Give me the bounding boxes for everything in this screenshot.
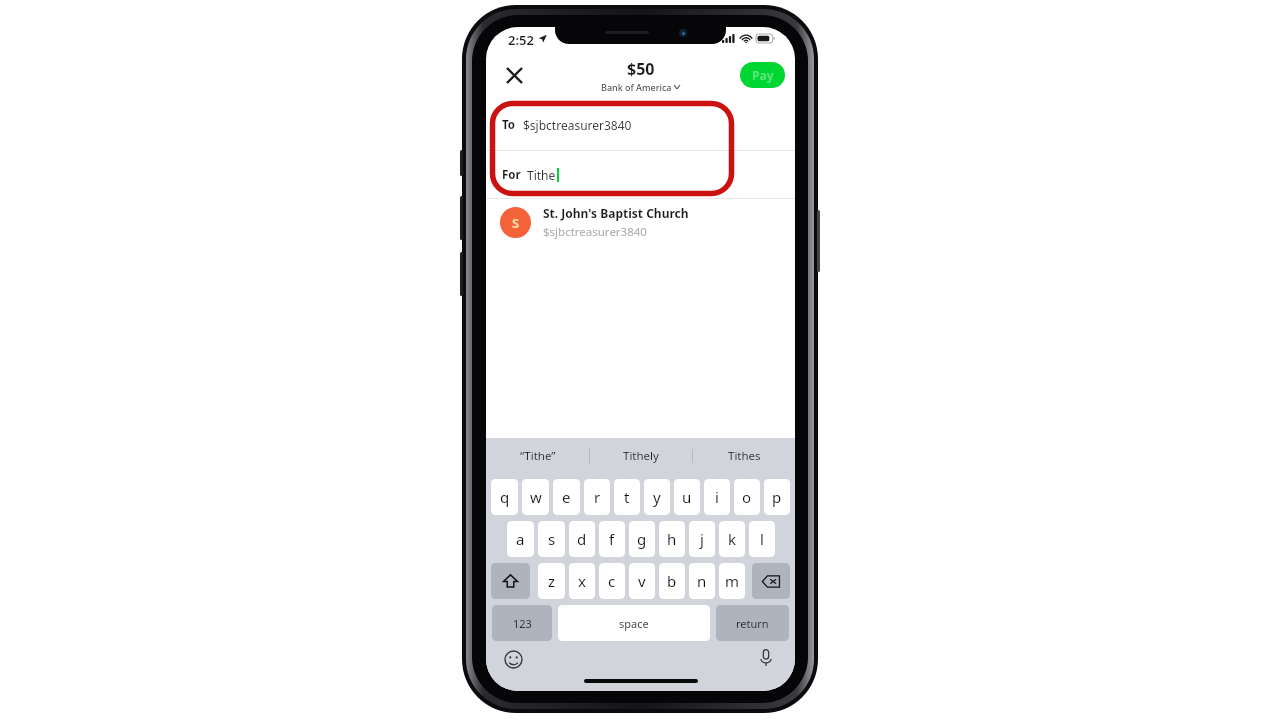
staticText: i (715, 487, 719, 507)
staticText: k (728, 529, 737, 549)
button[interactable]: m (719, 563, 745, 599)
staticText: s (548, 529, 556, 549)
button[interactable]: c (599, 563, 625, 599)
staticText: j (700, 529, 704, 549)
staticText: a (516, 529, 525, 549)
button[interactable]: Shift (491, 563, 530, 599)
button[interactable]: h (659, 521, 685, 557)
staticText: z (548, 571, 556, 591)
staticText: $50 (627, 58, 655, 80)
staticText: 2:52 (508, 31, 534, 49)
button[interactable]: Close (496, 57, 532, 93)
staticText: b (667, 571, 677, 591)
button[interactable]: p (764, 479, 790, 515)
button[interactable]: 123 (492, 605, 552, 641)
staticText: Tithely (623, 448, 659, 464)
staticText: S (512, 214, 520, 232)
button[interactable]: e (553, 479, 580, 515)
staticText: l (760, 529, 764, 549)
staticText: 123 (513, 616, 532, 631)
staticText: To (502, 117, 516, 133)
button[interactable]: $50 (601, 58, 680, 93)
button[interactable]: y (644, 479, 670, 515)
staticText: q (500, 487, 510, 507)
button[interactable]: a (507, 521, 534, 557)
button[interactable]: return (716, 605, 789, 641)
button[interactable]: u (674, 479, 700, 515)
staticText: space (619, 616, 649, 631)
button[interactable]: k (719, 521, 745, 557)
button[interactable]: o (734, 479, 760, 515)
staticText: Tithe (527, 167, 556, 183)
staticText: w (530, 487, 542, 507)
staticText: Bank of America (601, 81, 672, 93)
button[interactable]: To (486, 100, 795, 150)
staticText: o (742, 487, 752, 507)
button[interactable]: q (491, 479, 518, 515)
button[interactable]: n (689, 563, 715, 599)
button[interactable]: x (569, 563, 595, 599)
button[interactable]: t (614, 479, 640, 515)
button[interactable]: j (689, 521, 715, 557)
staticText: v (638, 571, 646, 591)
button[interactable]: Emoji (502, 648, 524, 670)
staticText: Pay (752, 67, 774, 83)
button[interactable]: Pay (740, 62, 785, 88)
button[interactable]: v (629, 563, 655, 599)
staticText: f (609, 529, 615, 549)
button[interactable]: g (629, 521, 655, 557)
button[interactable]: S (486, 199, 795, 246)
button[interactable]: Tithes (693, 438, 795, 474)
staticText: u (682, 487, 692, 507)
staticText: return (736, 616, 769, 631)
button[interactable]: f (599, 521, 625, 557)
button[interactable]: Backspace (752, 563, 790, 599)
button[interactable]: Tithely (590, 438, 692, 474)
button[interactable]: l (749, 521, 775, 557)
staticText: e (562, 487, 571, 507)
button[interactable]: b (659, 563, 685, 599)
button[interactable]: space (558, 605, 710, 641)
button[interactable]: s (538, 521, 565, 557)
staticText: p (772, 487, 782, 507)
staticText: y (653, 487, 661, 507)
staticText: d (577, 529, 587, 549)
button[interactable]: r (584, 479, 610, 515)
staticText: $sjbctreasurer3840 (523, 117, 632, 133)
staticText: g (637, 529, 647, 549)
button[interactable]: “Tithe” (486, 438, 589, 474)
staticText: St. John's Baptist Church (543, 205, 689, 221)
button[interactable]: z (538, 563, 565, 599)
button[interactable]: w (522, 479, 549, 515)
staticText: m (725, 571, 740, 591)
staticText: For (502, 167, 521, 183)
staticText: “Tithe” (520, 448, 556, 464)
staticText: r (594, 487, 601, 507)
staticText: x (578, 571, 586, 591)
button[interactable]: i (704, 479, 730, 515)
staticText: n (697, 571, 707, 591)
button[interactable]: Dictation (755, 647, 777, 669)
staticText: t (624, 487, 630, 507)
staticText: c (608, 571, 616, 591)
staticText: $sjbctreasurer3840 (543, 224, 647, 240)
staticText: Tithes (728, 448, 761, 464)
button[interactable]: d (569, 521, 595, 557)
button[interactable]: For (486, 151, 795, 198)
staticText: h (667, 529, 677, 549)
